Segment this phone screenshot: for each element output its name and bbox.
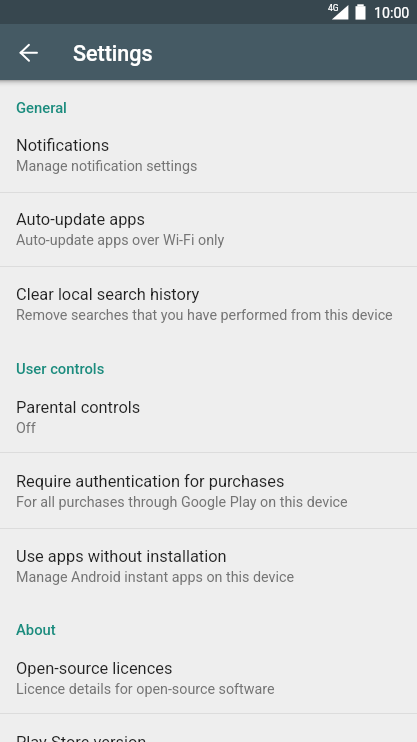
staticText: Clear local search history	[16, 285, 200, 304]
staticText: Open-source licences	[16, 659, 173, 678]
staticText: Auto-update apps over Wi-Fi only	[16, 232, 225, 249]
button[interactable]: Play Store version	[0, 714, 417, 742]
button[interactable]: Auto-update apps	[0, 193, 417, 266]
staticText: Off	[16, 420, 36, 437]
staticText: Require authentication for purchases	[16, 472, 285, 491]
button[interactable]: Clear local search history	[0, 267, 417, 340]
button[interactable]: Back	[4, 28, 52, 76]
staticText: General	[16, 99, 67, 116]
button[interactable]: Notifications	[0, 126, 417, 192]
staticText: 10:00	[374, 5, 410, 22]
button[interactable]: Open-source licences	[0, 649, 417, 713]
button[interactable]: Use apps without installation	[0, 529, 417, 602]
staticText: Play Store version	[16, 733, 147, 742]
staticText: Licence details for open-source software	[16, 681, 275, 698]
staticText: Remove searches that you have performed …	[16, 307, 393, 324]
staticText: Auto-update apps	[16, 210, 146, 229]
button[interactable]: Require authentication for purchases	[0, 453, 417, 528]
staticText: About	[16, 621, 56, 638]
staticText: Manage Android instant apps on this devi…	[16, 569, 294, 586]
staticText: User controls	[16, 360, 105, 377]
button[interactable]: Parental controls	[0, 388, 417, 452]
staticText: Manage notification settings	[16, 158, 198, 175]
staticText: 4G	[328, 3, 339, 13]
staticText: Parental controls	[16, 398, 141, 417]
staticText: For all purchases through Google Play on…	[16, 494, 348, 511]
staticText: Settings	[73, 41, 153, 66]
staticText: Use apps without installation	[16, 547, 227, 566]
staticText: Notifications	[16, 136, 110, 155]
